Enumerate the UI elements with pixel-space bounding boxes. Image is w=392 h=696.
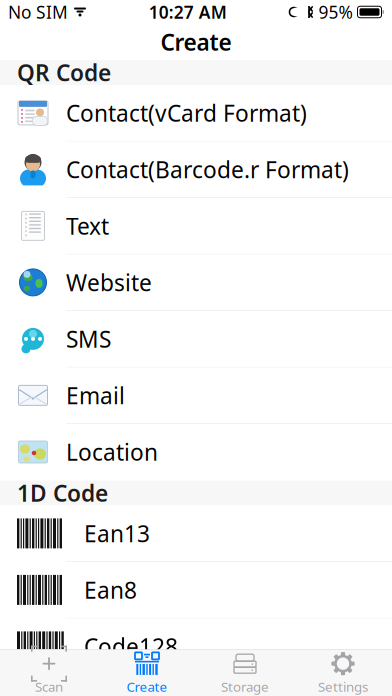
staticText: Contact(Barcode.r Format) (66, 154, 349, 184)
button[interactable]: Location (0, 424, 392, 480)
staticText: 10:27 AM (149, 0, 227, 23)
staticText: SMS (66, 324, 111, 354)
staticText: Text (66, 211, 109, 241)
staticText: 95% (318, 0, 352, 23)
button[interactable]: SMS (0, 311, 392, 367)
staticText: Scan (35, 678, 63, 695)
button[interactable]: Email (0, 367, 392, 424)
button[interactable]: Text (0, 198, 392, 254)
button[interactable]: Ean8 (0, 562, 392, 618)
button[interactable]: Scan (0, 650, 98, 696)
staticText: Website (66, 267, 152, 297)
button[interactable]: Contact(vCard Format) (0, 85, 392, 141)
staticText: Storage (221, 678, 269, 695)
staticText: Create (160, 27, 231, 57)
button[interactable]: Settings (294, 650, 392, 696)
staticText: Contact(vCard Format) (66, 98, 307, 128)
staticText: Code128 (84, 631, 178, 661)
staticText: Create (126, 678, 167, 695)
button[interactable]: Website (0, 254, 392, 311)
staticText: Location (66, 437, 158, 467)
button[interactable]: Contact(Barcode.r Format) (0, 141, 392, 198)
staticText: Settings (318, 678, 368, 695)
staticText: QR Code (17, 57, 111, 87)
staticText: No SIM (8, 0, 68, 23)
staticText: Ean8 (84, 575, 137, 605)
staticText: 1D Code (17, 478, 108, 508)
button[interactable]: Ean13 (0, 505, 392, 562)
staticText: Email (66, 380, 125, 410)
button[interactable]: Storage (196, 650, 294, 696)
staticText: Ean13 (84, 518, 150, 548)
button[interactable]: Create (98, 650, 196, 696)
button[interactable]: Code128 (0, 618, 392, 675)
